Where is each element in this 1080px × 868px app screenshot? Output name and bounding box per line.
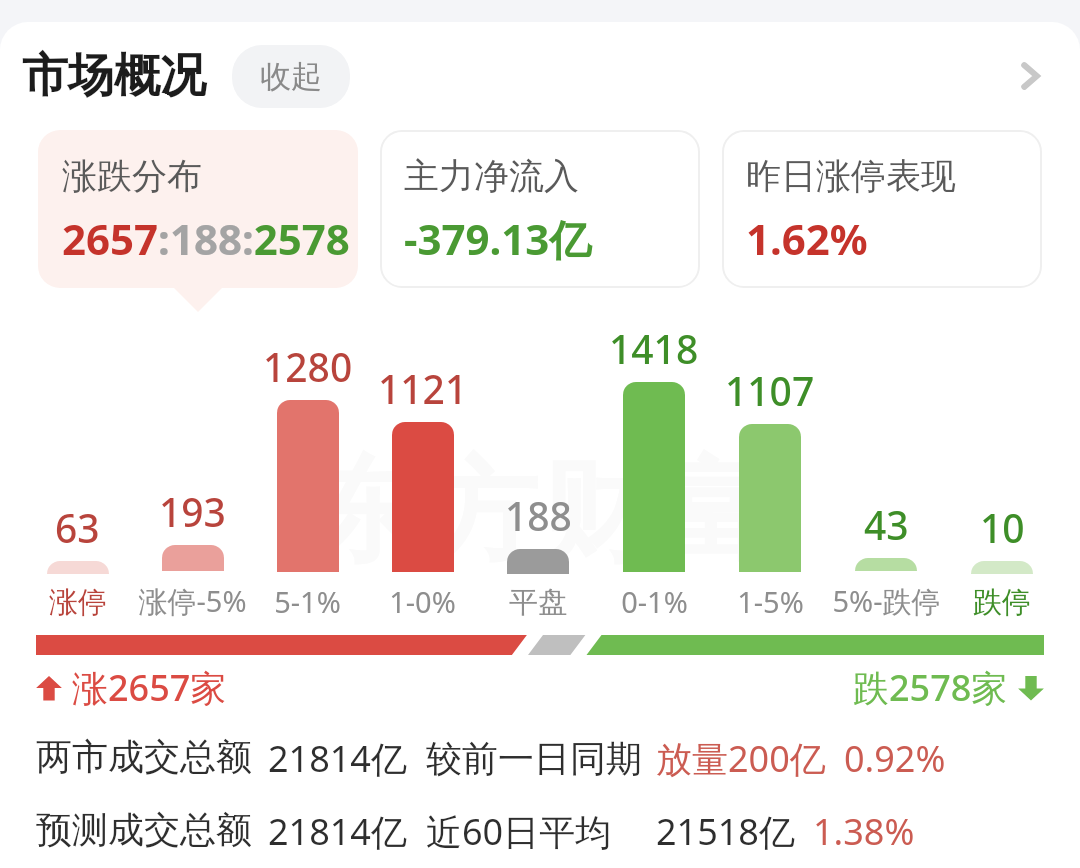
staticText: 1121 [378, 362, 468, 415]
staticText: 涨停 [49, 584, 107, 621]
staticText: 跌2578家 [853, 663, 1008, 712]
staticText: 63 [55, 501, 100, 554]
staticText: 10 [980, 501, 1025, 554]
staticText: 5%-跌停 [832, 581, 941, 621]
staticText: 跌停 [973, 584, 1031, 621]
staticText: 5-1% [274, 582, 341, 621]
button[interactable]: 涨跌分布 [38, 130, 358, 288]
staticText: 43 [864, 498, 909, 551]
staticText: -379.13亿 [404, 210, 592, 267]
staticText: 1-5% [737, 582, 804, 621]
staticText: 平盘 [509, 584, 567, 621]
staticText: 188 [505, 489, 572, 542]
staticText: 涨2657家 [72, 663, 227, 712]
staticText: 主力净流入 [404, 154, 579, 198]
staticText: 涨跌分布 [62, 154, 202, 198]
staticText: 1.62% [746, 210, 868, 267]
staticText: 21814亿 [268, 734, 407, 783]
button[interactable]: 主力净流入 [380, 130, 700, 288]
staticText: 东方财富 [308, 442, 772, 583]
staticText: 两市成交总额 [36, 734, 252, 779]
staticText: 21518亿 [656, 807, 795, 856]
staticText: 1280 [263, 340, 353, 393]
staticText: 昨日涨停表现 [746, 154, 956, 198]
button[interactable]: 市场概况 [22, 47, 206, 105]
button[interactable]: 昨日涨停表现 [722, 130, 1042, 288]
staticText: 近60日平均 [426, 807, 612, 856]
staticText: 2657:188:2578 [62, 210, 350, 267]
staticText: 0.92% [844, 734, 946, 783]
button[interactable]: 收起 [232, 45, 350, 108]
staticText: 0-1% [621, 582, 688, 621]
staticText: 预测成交总额 [36, 807, 252, 852]
staticText: 1107 [725, 364, 815, 417]
staticText: 1418 [609, 322, 699, 375]
staticText: 1.38% [813, 807, 915, 856]
staticText: 1-0% [389, 582, 456, 621]
staticText: 193 [159, 485, 226, 538]
button[interactable]: 展开更多 [1002, 48, 1058, 104]
staticText: 21814亿 [268, 807, 407, 856]
staticText: 收起 [260, 57, 322, 96]
staticText: 放量200亿 [656, 734, 826, 783]
staticText: 涨停-5% [138, 581, 247, 621]
staticText: 较前一日同期 [426, 736, 642, 781]
